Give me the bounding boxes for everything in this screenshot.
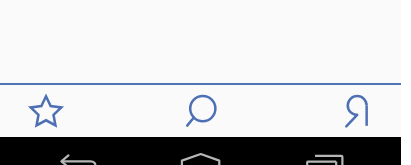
button[interactable]: Back <box>49 137 109 165</box>
button[interactable]: Home <box>171 137 231 165</box>
button[interactable]: Redo <box>331 85 383 136</box>
button[interactable]: Search <box>175 85 227 136</box>
button[interactable]: Recents <box>294 137 354 165</box>
button[interactable]: Bookmark <box>20 85 72 136</box>
